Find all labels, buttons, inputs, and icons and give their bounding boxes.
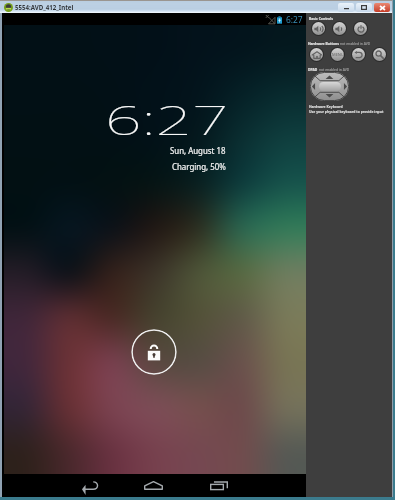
staticText: Charging, 50%	[172, 160, 226, 172]
staticText: Sun, August 18	[170, 144, 226, 156]
staticText: not enabled in AVD	[339, 41, 371, 46]
button[interactable]: Select	[319, 82, 341, 91]
button[interactable]: Back	[71, 474, 109, 497]
button[interactable]: D-pad	[310, 72, 349, 101]
staticText: 6:27	[286, 14, 303, 25]
button[interactable]: Minimise	[338, 3, 354, 12]
button[interactable]: Home	[309, 47, 324, 62]
staticText: 6:27	[105, 91, 230, 147]
button[interactable]: Maximise	[356, 3, 372, 12]
staticText: 5554:AVD_412_Intel	[15, 3, 74, 12]
staticText: Hardware Buttons	[308, 41, 339, 46]
button[interactable]: Recent apps	[200, 474, 238, 497]
staticText: not enabled in AVD	[318, 67, 350, 72]
staticText: MENU	[332, 52, 344, 57]
button[interactable]: Menu	[330, 47, 345, 62]
button[interactable]: Close	[374, 3, 390, 12]
button[interactable]: Search	[372, 47, 387, 62]
staticText: Basic Controls	[309, 16, 333, 21]
button[interactable]: Volume down	[332, 21, 347, 36]
staticText: Use your physical keyboard to provide in…	[309, 109, 384, 114]
staticText: DPAD	[308, 67, 318, 72]
button[interactable]: Power	[353, 21, 368, 36]
staticText: Hardware Keyboard	[309, 104, 343, 109]
button[interactable]: Unlock	[131, 329, 177, 375]
button[interactable]: Back	[351, 47, 366, 62]
button[interactable]: Volume up	[311, 21, 326, 36]
button[interactable]: Home	[134, 474, 172, 497]
